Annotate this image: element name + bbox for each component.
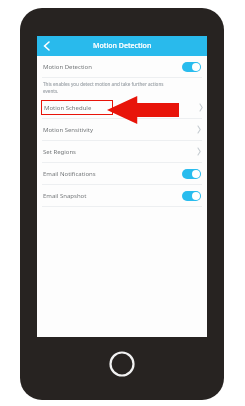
staticText: Motion Detection [43, 63, 182, 71]
staticText: Motion Schedule [44, 104, 92, 112]
staticText: This enables you detect motion and take … [43, 81, 164, 87]
staticText: events. [43, 88, 59, 94]
button[interactable]: Motion Schedule [37, 97, 207, 118]
staticText: Email Snapshot [43, 192, 182, 200]
other: Home [109, 351, 135, 377]
button[interactable]: Motion Detection [37, 56, 207, 77]
button[interactable]: Back [37, 36, 57, 56]
button[interactable]: Set Regions [37, 141, 207, 162]
button[interactable]: Email Notifications [37, 163, 207, 184]
button[interactable]: Motion Sensitivity [37, 119, 207, 140]
staticText: Motion Detection [93, 41, 152, 51]
staticText: Email Notifications [43, 170, 182, 178]
button[interactable]: Email Snapshot [37, 185, 207, 206]
staticText: Set Regions [43, 148, 197, 156]
staticText: Motion Sensitivity [43, 126, 197, 134]
